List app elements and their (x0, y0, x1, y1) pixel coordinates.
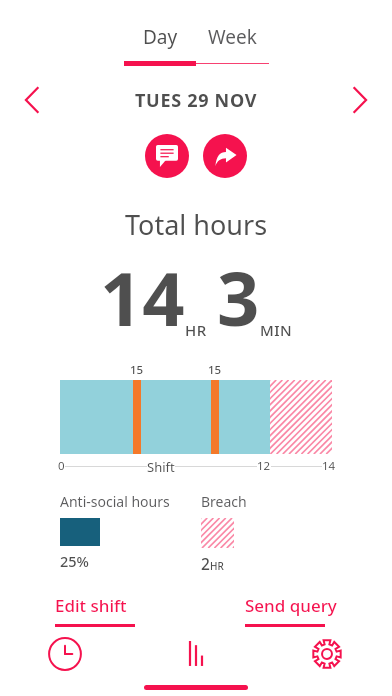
staticText: Edit shift (55, 594, 127, 617)
staticText: Total hours (125, 206, 268, 243)
button[interactable]: Time (0, 627, 130, 681)
staticText: Send query (245, 594, 337, 617)
staticText: 3 (217, 247, 260, 348)
staticText: MIN (260, 320, 293, 340)
staticText: 2 (201, 553, 210, 574)
staticText: HR (185, 320, 207, 340)
button[interactable]: Week (196, 24, 269, 50)
staticText: Shift (147, 458, 175, 474)
button[interactable]: Stats (130, 627, 261, 681)
staticText: 14 (322, 458, 336, 474)
staticText: 15 (130, 362, 144, 378)
button[interactable]: Next day (328, 83, 392, 117)
button[interactable]: Send query (245, 594, 337, 627)
staticText: 14 (100, 247, 185, 348)
staticText: 25% (60, 551, 89, 571)
staticText: HR (210, 559, 224, 573)
staticText: 12 (257, 458, 271, 474)
staticText: Anti-social hours (60, 492, 170, 511)
staticText: Breach (201, 492, 247, 511)
button[interactable]: Share (203, 134, 247, 178)
button[interactable]: Edit shift (55, 594, 135, 627)
button[interactable]: Previous day (0, 83, 64, 117)
button[interactable]: Day (124, 24, 196, 50)
staticText: Day (143, 24, 178, 50)
staticText: 0 (58, 458, 65, 474)
staticText: Week (208, 24, 257, 50)
button[interactable]: Comments (145, 134, 189, 178)
staticText: TUES 29 NOV (135, 88, 258, 113)
button[interactable]: Settings (261, 627, 392, 681)
staticText: 15 (208, 362, 222, 378)
